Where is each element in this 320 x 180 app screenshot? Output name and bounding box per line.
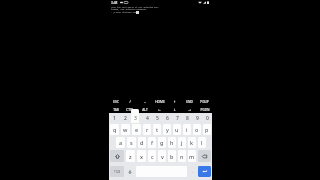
button[interactable]: 4	[142, 113, 152, 123]
staticText: l	[201, 139, 203, 146]
button[interactable]: 1	[109, 113, 120, 123]
button[interactable]: PGDN	[197, 106, 212, 113]
button[interactable]: t	[153, 124, 161, 135]
button[interactable]: g	[158, 137, 166, 148]
button[interactable]: 7	[172, 113, 182, 123]
button[interactable]: Shift	[110, 150, 124, 162]
button[interactable]: y	[163, 124, 171, 135]
button[interactable]: k	[188, 137, 196, 148]
staticText: r	[146, 126, 149, 133]
button[interactable]: ALT	[137, 106, 152, 113]
button[interactable]: x	[137, 150, 146, 162]
staticText: ?123	[114, 170, 121, 174]
staticText: ←	[158, 108, 161, 112]
button[interactable]: o	[193, 124, 201, 135]
button[interactable]: w	[121, 124, 130, 135]
staticText: x	[140, 153, 143, 160]
staticText: s	[130, 139, 133, 146]
staticText: 0	[206, 115, 209, 122]
staticText: 3:48	[111, 1, 118, 5]
staticText: [For the last while it has detected mal-	[111, 6, 160, 9]
button[interactable]: END	[182, 97, 197, 106]
staticText: PGUP	[200, 100, 209, 104]
button[interactable]: e	[132, 124, 141, 135]
button[interactable]: ?123	[110, 166, 124, 177]
button[interactable]: i	[183, 124, 191, 135]
staticText: n	[180, 153, 184, 160]
staticText: ALT	[142, 108, 148, 112]
button[interactable]: 9	[192, 113, 202, 123]
staticText: TAB	[113, 108, 119, 112]
staticText: HOME	[155, 100, 165, 104]
staticText: t	[156, 126, 159, 133]
button[interactable]: v	[158, 150, 166, 162]
button[interactable]: q	[110, 124, 119, 135]
staticText: d	[140, 139, 144, 146]
staticText: 7	[176, 115, 179, 122]
staticText: 4	[146, 115, 149, 122]
button[interactable]: –	[137, 97, 152, 106]
staticText: 8	[186, 115, 189, 122]
button[interactable]: p	[203, 124, 211, 135]
button[interactable]: 0	[202, 113, 212, 123]
button[interactable]: PGUP	[197, 97, 212, 106]
button[interactable]: HOME	[152, 97, 167, 106]
staticText: PGDN	[200, 108, 210, 112]
button[interactable]: n	[178, 150, 186, 162]
button[interactable]: f	[148, 137, 156, 148]
button[interactable]: Voice input	[125, 163, 135, 180]
button[interactable]: b	[168, 150, 176, 162]
staticText: i	[186, 126, 188, 133]
button[interactable]: l	[198, 137, 206, 148]
staticText: 6	[166, 115, 169, 122]
staticText: CTRL	[126, 108, 134, 112]
button[interactable]: ESC	[109, 97, 123, 106]
staticText: j	[181, 139, 183, 146]
button[interactable]: CTRL	[123, 106, 137, 113]
button[interactable]: 6	[162, 113, 172, 123]
staticText: a	[119, 139, 123, 146]
staticText: 9	[196, 115, 199, 122]
button[interactable]: 2	[120, 113, 131, 123]
staticText: 2	[124, 115, 127, 122]
button[interactable]: /	[123, 97, 137, 106]
staticText: h	[170, 139, 174, 146]
staticText: p	[205, 126, 209, 133]
staticText: 5	[156, 115, 159, 122]
staticText: ↓	[173, 108, 176, 112]
staticText: w	[123, 126, 128, 133]
staticText: /	[129, 100, 131, 104]
staticText: END	[186, 100, 193, 104]
staticText: ↑	[173, 100, 176, 104]
staticText: ~ $ echo starting job	[111, 11, 137, 14]
staticText: ESC	[113, 100, 119, 104]
button[interactable]: r	[143, 124, 151, 135]
button[interactable]: j	[178, 137, 186, 148]
button[interactable]: 3	[131, 113, 142, 123]
button[interactable]: Enter	[198, 166, 211, 177]
staticText: 3	[135, 115, 138, 122]
button[interactable]: 5	[152, 113, 162, 123]
button[interactable]: a	[116, 137, 125, 148]
button[interactable]: h	[168, 137, 176, 148]
button[interactable]: c	[148, 150, 156, 162]
staticText: q	[113, 126, 117, 133]
button[interactable]: u	[173, 124, 181, 135]
staticText: u	[175, 126, 179, 133]
button[interactable]: z	[126, 150, 135, 162]
staticText: 3	[134, 115, 137, 122]
button[interactable]: 8	[182, 113, 192, 123]
button[interactable]: ↑	[167, 97, 182, 106]
staticText: –	[144, 100, 146, 104]
button[interactable]: →	[182, 106, 197, 113]
button[interactable]: d	[138, 137, 146, 148]
button[interactable]: s	[127, 137, 136, 148]
button[interactable]: ←	[152, 106, 167, 113]
button[interactable]: Backspace	[198, 150, 211, 162]
button[interactable]: m	[188, 150, 196, 162]
button[interactable]: TAB	[109, 106, 123, 113]
staticText: o	[195, 126, 199, 133]
button[interactable]: ↓	[167, 106, 182, 113]
